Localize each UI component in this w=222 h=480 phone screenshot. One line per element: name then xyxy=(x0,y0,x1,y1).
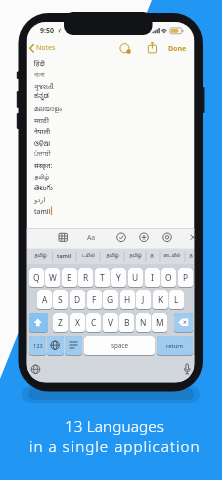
button[interactable]: தமிழ் xyxy=(124,250,146,262)
button[interactable]: G xyxy=(103,290,118,310)
staticText: தமிழ் xyxy=(106,253,119,259)
staticText: U xyxy=(132,272,139,283)
staticText: return xyxy=(166,342,184,350)
staticText: K xyxy=(158,294,164,305)
staticText: E xyxy=(67,272,72,283)
staticText: த xyxy=(150,253,154,259)
button[interactable]: L xyxy=(169,290,184,310)
button[interactable]: E xyxy=(62,268,77,288)
button[interactable]: Done xyxy=(164,43,190,54)
button[interactable]: Q xyxy=(29,268,44,288)
staticText: R xyxy=(83,272,89,283)
button[interactable]: A xyxy=(37,290,52,310)
staticText: ଓଡ଼ିଆ xyxy=(34,139,51,148)
staticText: O xyxy=(165,272,172,283)
button[interactable]: X xyxy=(70,313,85,333)
staticText: C xyxy=(91,317,97,328)
button[interactable]: தமிழ் xyxy=(29,250,51,262)
button[interactable]: F xyxy=(87,290,102,310)
staticText: Q xyxy=(33,272,40,283)
staticText: A xyxy=(42,294,48,305)
staticText: తెలుగు xyxy=(34,184,53,193)
staticText: S xyxy=(58,294,63,305)
staticText: space xyxy=(111,341,128,350)
button[interactable]: 123 xyxy=(29,336,46,356)
staticText: मराठी xyxy=(34,116,49,125)
button[interactable]: tamil xyxy=(53,250,75,262)
button[interactable]: டையில் xyxy=(161,250,183,262)
staticText: G xyxy=(107,294,114,305)
button[interactable]: S xyxy=(53,290,68,310)
button[interactable]: த xyxy=(141,250,163,262)
button[interactable]: C xyxy=(86,313,101,333)
staticText: L xyxy=(174,294,179,305)
staticText: தமிழ் xyxy=(129,253,142,259)
staticText: tamil xyxy=(57,252,72,260)
button[interactable] xyxy=(47,336,64,356)
staticText: டையில் xyxy=(163,253,181,259)
button[interactable]: return xyxy=(157,336,193,356)
button[interactable]: R xyxy=(78,268,93,288)
button[interactable]: M xyxy=(152,313,167,333)
button[interactable]: N xyxy=(136,313,151,333)
button[interactable]: K xyxy=(153,290,168,310)
staticText: P xyxy=(183,272,189,283)
staticText: தமிழ் xyxy=(34,174,49,181)
staticText: 13 Languages xyxy=(65,416,165,435)
staticText: V xyxy=(108,317,114,328)
staticText: नेपाली xyxy=(34,127,50,136)
button[interactable]: தமிழ் xyxy=(101,250,123,262)
staticText: M xyxy=(156,317,164,328)
button[interactable]: P xyxy=(178,268,193,288)
button[interactable]: J xyxy=(136,290,151,310)
button[interactable]: I xyxy=(145,268,160,288)
button[interactable]: த xyxy=(180,250,202,262)
staticText: 123 xyxy=(33,342,43,350)
staticText: in a single application xyxy=(29,436,201,455)
staticText: മലയാളം xyxy=(34,106,62,113)
button[interactable]: டமில் xyxy=(77,250,99,262)
staticText: ಕನ್ನಡ xyxy=(34,93,49,102)
button[interactable]: space xyxy=(84,336,155,356)
staticText: டமில் xyxy=(82,253,95,259)
staticText: اردو xyxy=(34,196,46,204)
button[interactable] xyxy=(174,313,193,333)
staticText: Done xyxy=(168,44,187,54)
staticText: Notes xyxy=(36,43,56,53)
button[interactable] xyxy=(65,336,82,356)
staticText: H xyxy=(124,294,131,305)
staticText: T xyxy=(100,272,105,283)
staticText: D xyxy=(74,294,81,305)
staticText: B xyxy=(124,317,130,328)
button[interactable]: Y xyxy=(111,268,126,288)
staticText: tamil xyxy=(34,207,51,216)
staticText: த xyxy=(189,253,193,259)
button[interactable] xyxy=(29,313,48,333)
button[interactable]: D xyxy=(70,290,85,310)
staticText: Z xyxy=(58,317,63,328)
staticText: J xyxy=(142,294,145,305)
staticText: বাংলা xyxy=(34,72,45,79)
staticText: X xyxy=(75,317,80,328)
staticText: 9:50 xyxy=(40,26,54,36)
staticText: I xyxy=(151,272,154,283)
staticText: ਪੰਜਾਬੀ xyxy=(34,151,51,158)
button[interactable]: H xyxy=(120,290,135,310)
staticText: ગુજરાતી xyxy=(34,81,54,92)
staticText: W xyxy=(49,272,57,283)
staticText: संस्कृत: xyxy=(34,161,53,170)
staticText: தமிழ் xyxy=(34,253,47,259)
button[interactable]: T xyxy=(95,268,110,288)
staticText: N xyxy=(140,317,147,328)
button[interactable]: U xyxy=(128,268,143,288)
staticText: हिंदी xyxy=(34,59,45,68)
staticText: Y xyxy=(116,272,121,283)
staticText: F xyxy=(92,294,97,305)
button[interactable]: B xyxy=(119,313,134,333)
button[interactable]: W xyxy=(45,268,60,288)
button[interactable]: V xyxy=(103,313,118,333)
button[interactable]: Z xyxy=(53,313,68,333)
staticText: Aa xyxy=(87,233,96,242)
button[interactable]: O xyxy=(161,268,176,288)
button[interactable]: Aa xyxy=(83,232,99,243)
